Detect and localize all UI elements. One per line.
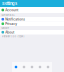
button[interactable]: Tab xyxy=(36,62,44,72)
staticText: Notifications xyxy=(5,17,25,21)
button[interactable]: Notifications xyxy=(0,17,64,21)
staticText: MORE xyxy=(1,26,9,30)
button[interactable]: About xyxy=(0,30,64,34)
staticText: Settings xyxy=(2,1,17,6)
staticText: Account xyxy=(5,8,18,12)
staticText: Privacy xyxy=(5,22,17,26)
button[interactable]: Account xyxy=(0,7,64,13)
staticText: About xyxy=(5,30,14,34)
button[interactable]: Tab xyxy=(20,62,28,72)
button[interactable]: Tab xyxy=(44,62,52,72)
staticText: Version 1.0.0 (1234) xyxy=(1,35,24,38)
button[interactable]: Privacy xyxy=(0,21,64,26)
staticText: GENERAL xyxy=(1,13,14,17)
button[interactable]: Tab xyxy=(28,62,36,72)
button[interactable]: Tab xyxy=(12,62,20,72)
